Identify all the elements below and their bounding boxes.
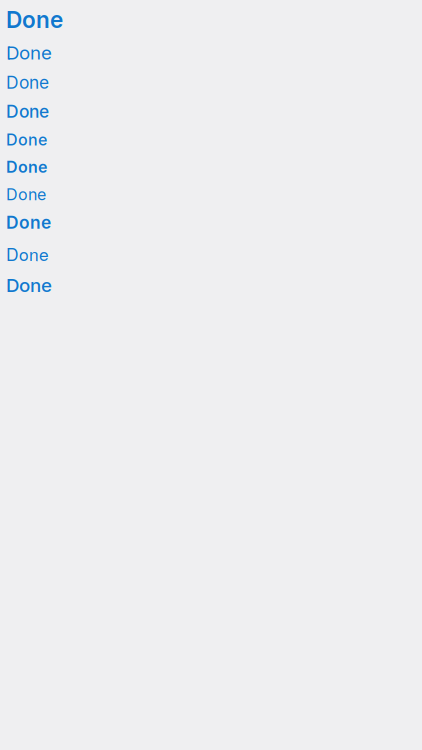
staticText: Done <box>6 212 51 233</box>
staticText: Done <box>6 41 52 64</box>
staticText: Done <box>6 157 47 177</box>
staticText: Done <box>6 72 49 93</box>
staticText: Done <box>6 241 49 266</box>
staticText: Done <box>6 185 46 204</box>
staticText: Done <box>6 274 52 296</box>
staticText: Done <box>6 130 47 149</box>
staticText: Done <box>6 101 49 122</box>
staticText: Done <box>6 6 63 33</box>
